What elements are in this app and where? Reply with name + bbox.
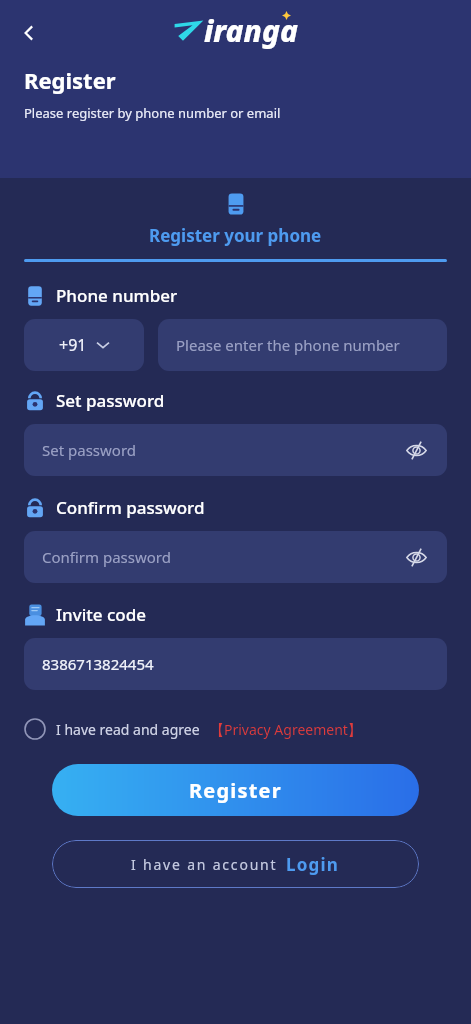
button[interactable]: Back (8, 12, 50, 54)
staticText: Register (189, 777, 282, 804)
staticText: Set password (42, 440, 137, 460)
button[interactable]: Confirm password (24, 531, 447, 583)
staticText: Please register by phone number or email (24, 104, 281, 122)
staticText: I have read and agree (56, 720, 200, 739)
button[interactable]: Register (52, 764, 419, 816)
staticText: I have an account (131, 855, 278, 874)
staticText: Confirm password (42, 547, 171, 567)
staticText: +91 (59, 334, 87, 356)
staticText: Register your phone (149, 224, 322, 247)
staticText: Phone number (56, 284, 178, 307)
staticText: Set password (56, 389, 165, 412)
button[interactable]: +91 (24, 319, 144, 371)
button[interactable]: I have read and agree (24, 718, 362, 740)
staticText: Login (286, 853, 340, 876)
button[interactable]: Toggle password visibility (401, 435, 431, 465)
staticText: 【Privacy Agreement】 (210, 720, 362, 739)
button[interactable]: Set password (24, 424, 447, 476)
staticText: Please enter the phone number (176, 335, 400, 355)
button[interactable]: Register your phone (0, 192, 471, 262)
staticText: iranga (204, 10, 298, 50)
staticText: Register (24, 65, 116, 95)
staticText: Invite code (56, 603, 146, 626)
staticText: 8386713824454 (42, 654, 154, 674)
button[interactable]: 8386713824454 (24, 638, 447, 690)
button[interactable]: I have an account (52, 840, 419, 888)
button[interactable]: Toggle password visibility (401, 542, 431, 572)
button[interactable]: Please enter the phone number (158, 319, 447, 371)
staticText: Confirm password (56, 496, 205, 519)
